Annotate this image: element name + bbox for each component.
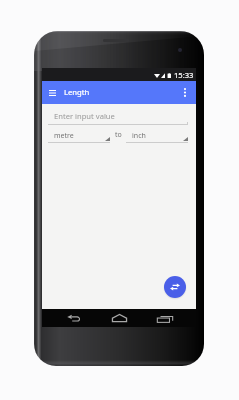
staticText: Enter input value bbox=[54, 111, 115, 121]
staticText: to bbox=[115, 130, 122, 140]
button[interactable]: Open navigation drawer bbox=[44, 81, 60, 104]
button[interactable]: Swap units bbox=[164, 276, 186, 298]
button[interactable]: More options bbox=[178, 81, 192, 104]
staticText: metre bbox=[54, 131, 74, 141]
staticText: Length bbox=[64, 87, 90, 97]
button[interactable]: Home bbox=[104, 309, 134, 327]
button[interactable]: Enter input value bbox=[48, 109, 188, 125]
button[interactable]: inch bbox=[126, 129, 188, 143]
staticText: 15:33 bbox=[174, 70, 194, 80]
button[interactable]: Recent apps bbox=[150, 309, 180, 327]
staticText: inch bbox=[132, 131, 146, 141]
button[interactable]: metre bbox=[48, 129, 110, 143]
button[interactable]: Back bbox=[58, 309, 88, 327]
